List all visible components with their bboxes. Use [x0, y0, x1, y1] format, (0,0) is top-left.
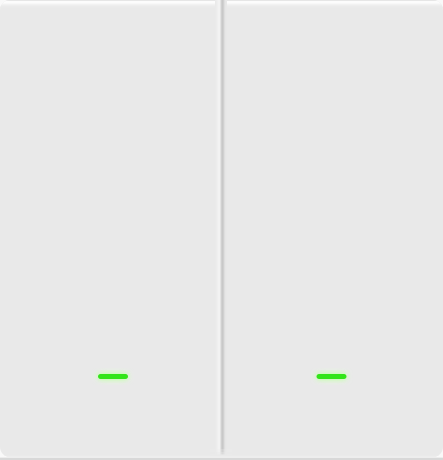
button[interactable]: Right switch: [220, 0, 443, 457]
button[interactable]: Left switch: [0, 0, 220, 457]
